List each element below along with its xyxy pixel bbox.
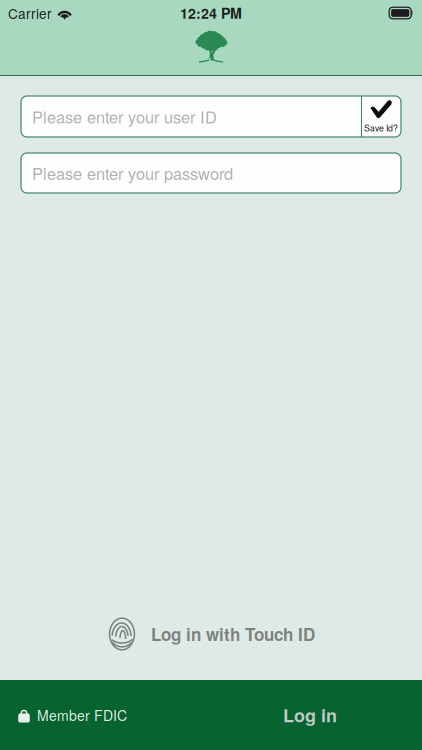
staticText: 12:24 PM	[180, 3, 242, 23]
staticText: Log in with Touch ID	[151, 622, 315, 646]
button[interactable]: Save Id?	[361, 96, 401, 137]
staticText: Please enter your user ID	[32, 105, 217, 128]
staticText: Log in	[283, 702, 337, 728]
staticText: Member FDIC	[37, 705, 127, 725]
button[interactable]: Log in with Touch ID	[97, 610, 325, 658]
staticText: Carrier	[8, 3, 52, 23]
staticText: Please enter your password	[32, 161, 233, 185]
button[interactable]: Member FDIC	[0, 697, 137, 733]
staticText: Save Id?	[364, 121, 398, 134]
button[interactable]: Log in	[267, 694, 353, 736]
